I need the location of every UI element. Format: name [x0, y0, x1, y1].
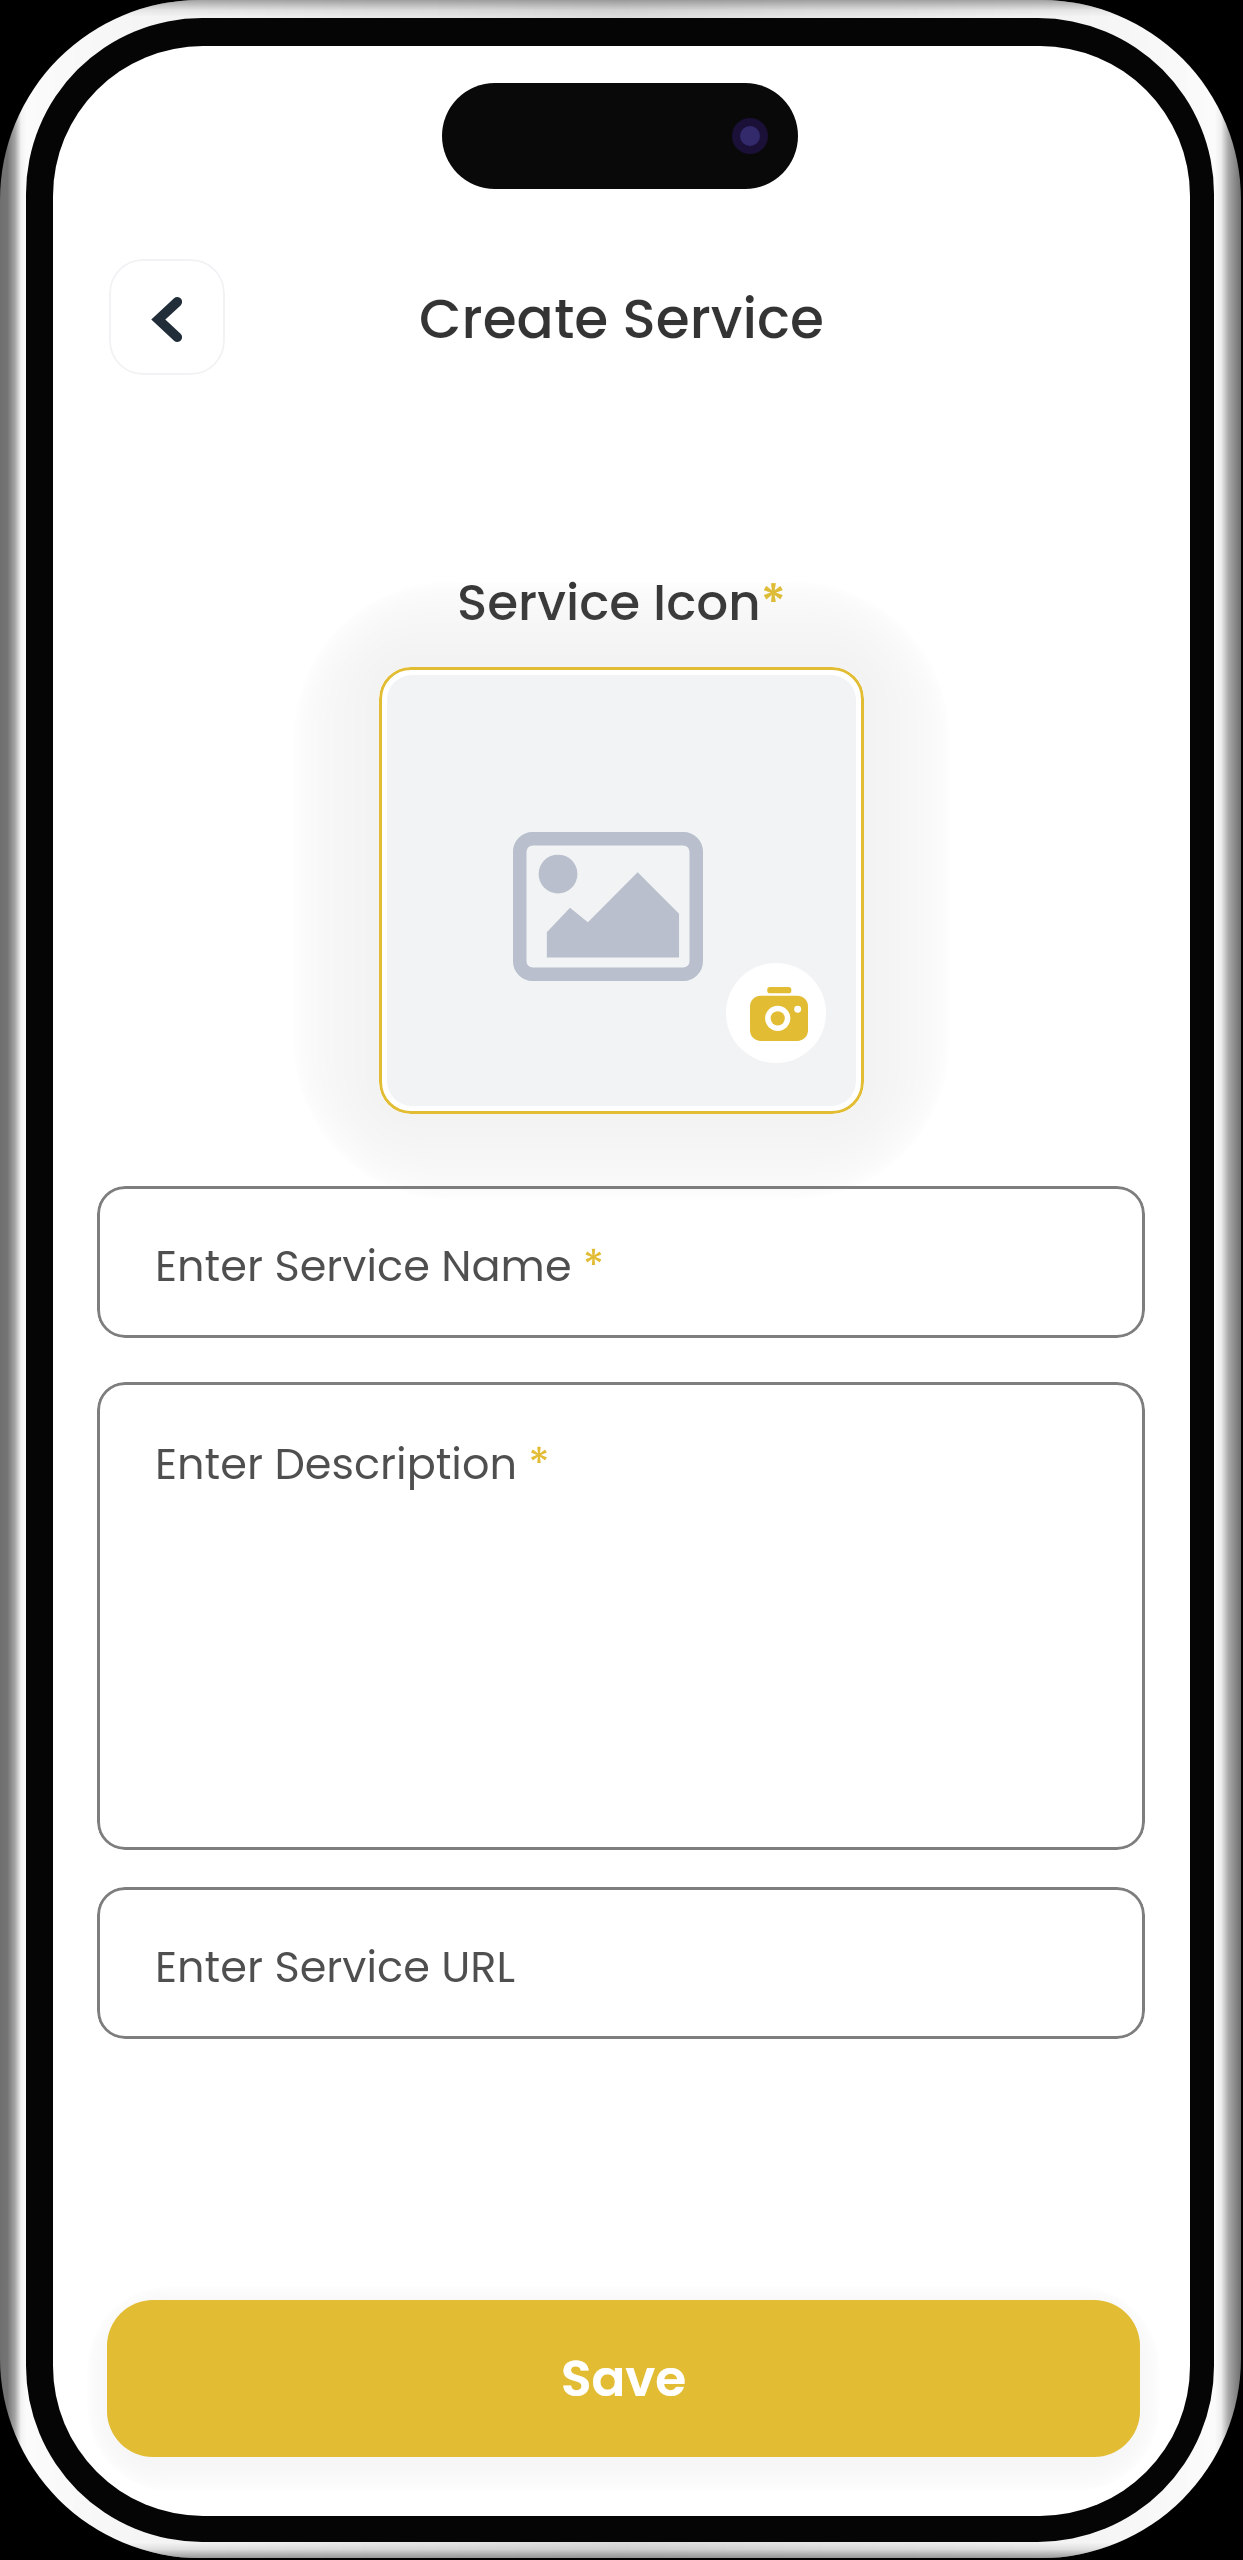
staticText: Service Icon*: [457, 568, 786, 638]
staticText: Create Service: [53, 280, 1190, 357]
button[interactable]: Enter Service URL: [97, 1887, 1145, 2039]
button[interactable]: Save: [107, 2300, 1140, 2457]
staticText: Enter Description *: [155, 1434, 550, 1494]
staticText: Save: [561, 2344, 687, 2414]
button[interactable]: Enter Service Name *: [97, 1186, 1145, 1338]
staticText: Enter Service URL: [155, 1937, 516, 1997]
button[interactable]: Pick service icon: [379, 667, 864, 1114]
button[interactable]: Back: [109, 259, 225, 375]
button[interactable]: Enter Description *: [97, 1382, 1145, 1850]
staticText: Enter Service Name *: [155, 1236, 604, 1296]
